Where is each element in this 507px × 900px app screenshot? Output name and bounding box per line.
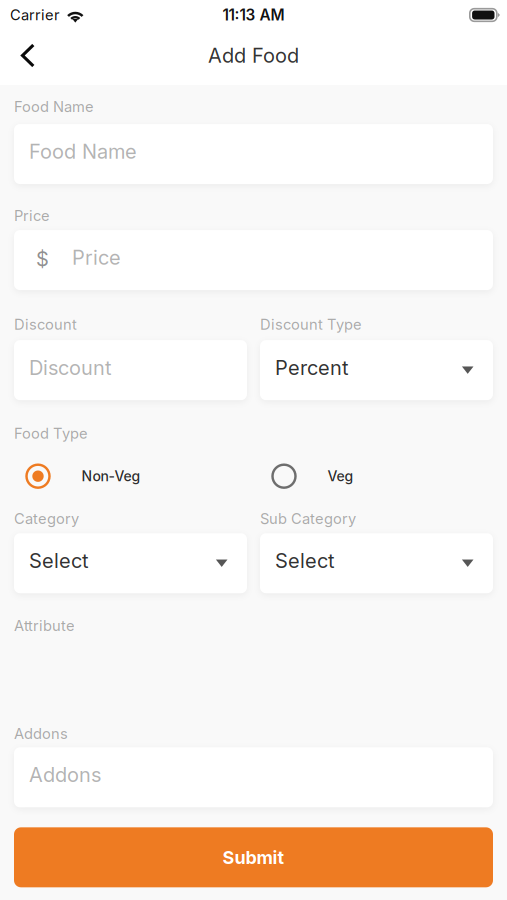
staticText: Percent bbox=[275, 355, 349, 380]
staticText: Addons bbox=[29, 763, 101, 787]
staticText: Veg bbox=[327, 468, 353, 485]
staticText: Category bbox=[14, 510, 79, 527]
button[interactable]: $ bbox=[14, 230, 493, 290]
staticText: $ bbox=[36, 247, 49, 271]
staticText: Addons bbox=[14, 725, 68, 742]
staticText: Select bbox=[275, 549, 335, 573]
staticText: Food Name bbox=[29, 139, 137, 164]
staticText: Attribute bbox=[14, 617, 75, 634]
staticText: 11:13 AM bbox=[222, 6, 284, 24]
staticText: Non-Veg bbox=[81, 468, 140, 485]
staticText: Carrier bbox=[10, 6, 60, 24]
staticText: Price bbox=[14, 207, 50, 224]
staticText: Discount bbox=[14, 316, 77, 333]
button[interactable]: Discount bbox=[14, 340, 247, 400]
button[interactable]: Addons bbox=[14, 747, 493, 807]
staticText: Discount Type bbox=[260, 316, 362, 333]
button[interactable]: Select bbox=[14, 533, 247, 593]
button[interactable]: Non-Veg bbox=[14, 461, 247, 491]
staticText: Price bbox=[72, 245, 121, 270]
button[interactable]: Back bbox=[0, 34, 52, 80]
staticText: Submit bbox=[222, 846, 284, 868]
staticText: Food Type bbox=[14, 425, 88, 442]
staticText: Select bbox=[29, 549, 89, 573]
staticText: Sub Category bbox=[260, 510, 356, 527]
staticText: Add Food bbox=[208, 43, 299, 68]
button[interactable]: Percent bbox=[260, 340, 493, 400]
staticText: Discount bbox=[29, 355, 112, 380]
staticText: Food Name bbox=[14, 98, 94, 115]
button[interactable]: Veg bbox=[260, 461, 493, 491]
button[interactable]: Submit bbox=[14, 827, 493, 887]
button[interactable]: Select bbox=[260, 533, 493, 593]
button[interactable]: Food Name bbox=[14, 124, 493, 184]
